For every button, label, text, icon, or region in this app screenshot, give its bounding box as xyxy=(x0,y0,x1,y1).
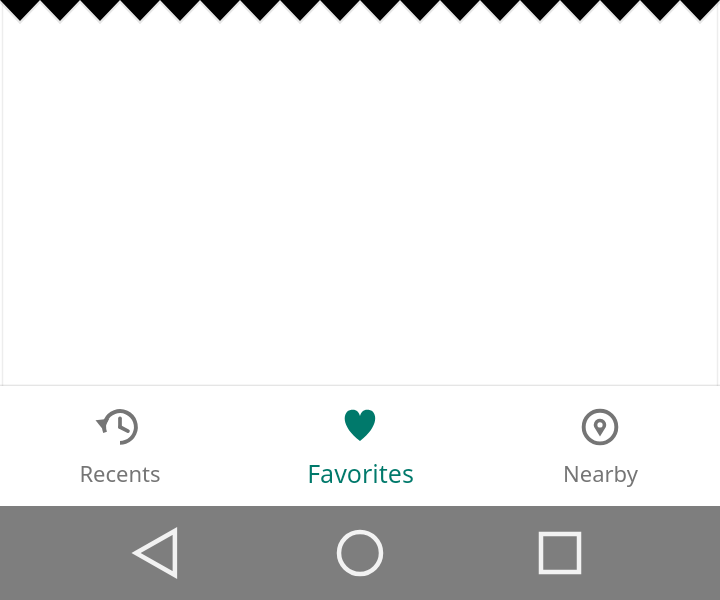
staticText: Favorites xyxy=(307,456,414,490)
button[interactable]: Recents xyxy=(0,386,240,506)
button[interactable]: Favorites xyxy=(240,386,480,506)
staticText: Nearby xyxy=(563,458,638,488)
button[interactable]: Nearby xyxy=(480,386,720,506)
staticText: Recents xyxy=(79,458,161,488)
